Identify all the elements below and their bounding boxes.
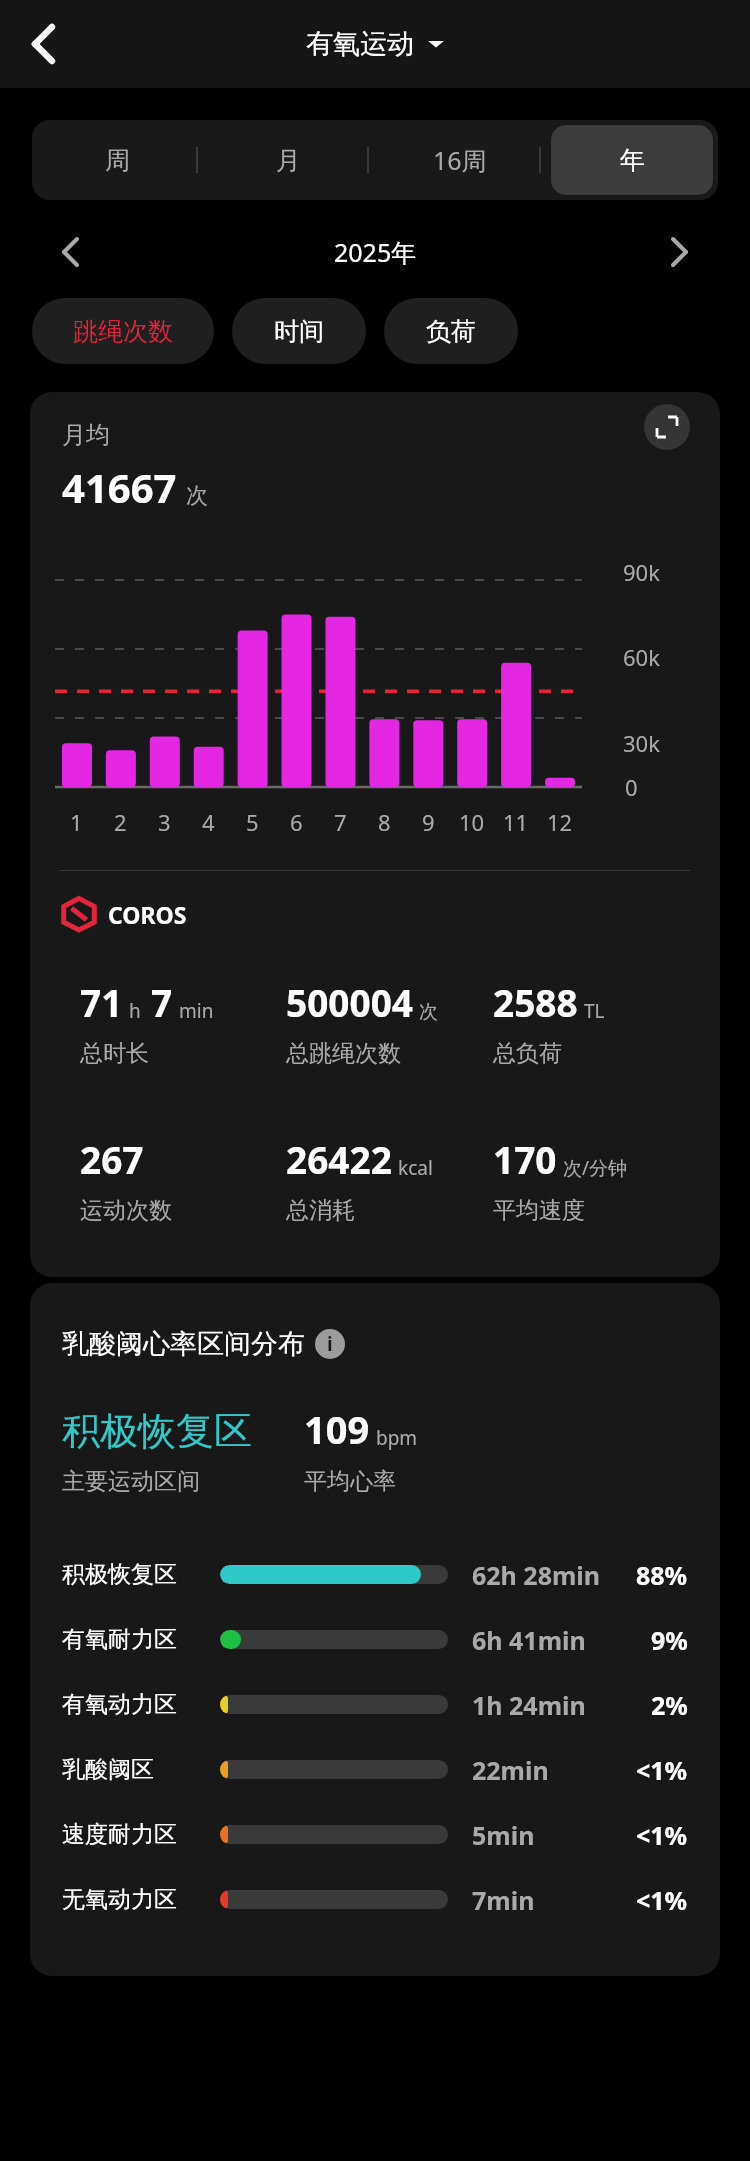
staticText: bpm: [376, 1425, 418, 1451]
staticText: 2025年: [334, 235, 417, 269]
staticText: 109: [304, 1403, 370, 1455]
staticText: 有氧动力区: [62, 1690, 212, 1719]
button[interactable]: 年: [551, 125, 713, 195]
button[interactable]: 速度耐力区: [62, 1802, 688, 1867]
staticText: 积极恢复区: [62, 1560, 212, 1589]
staticText: 7min: [472, 1883, 636, 1917]
staticText: 主要运动区间: [62, 1467, 200, 1496]
staticText: 2: [114, 807, 127, 837]
button[interactable]: 积极恢复区: [62, 1542, 688, 1607]
staticText: 88%: [636, 1558, 688, 1592]
staticText: <1%: [636, 1753, 688, 1787]
button[interactable]: Next year: [654, 226, 706, 278]
staticText: 2588: [493, 977, 578, 1027]
button[interactable]: 时间: [232, 298, 366, 364]
staticText: <1%: [636, 1818, 688, 1852]
staticText: 月: [276, 145, 301, 176]
staticText: 26422: [286, 1134, 392, 1184]
staticText: 总跳绳次数: [286, 1039, 401, 1068]
button[interactable]: Back: [8, 9, 78, 79]
staticText: 2%: [651, 1688, 688, 1722]
staticText: 22min: [472, 1753, 636, 1787]
staticText: 8: [378, 807, 391, 837]
staticText: 3: [158, 807, 171, 837]
staticText: 乳酸阈区: [62, 1755, 212, 1784]
staticText: 90k: [623, 557, 660, 587]
staticText: 平均速度: [493, 1196, 585, 1225]
button[interactable]: 有氧动力区: [62, 1672, 688, 1737]
staticText: 周: [105, 145, 130, 176]
staticText: 负荷: [426, 316, 476, 347]
staticText: 乳酸阈心率区间分布: [62, 1327, 305, 1361]
staticText: i: [327, 1331, 333, 1357]
staticText: 有氧耐力区: [62, 1625, 212, 1654]
button[interactable]: 乳酸阈区: [62, 1737, 688, 1802]
staticText: COROS: [108, 899, 187, 930]
staticText: <1%: [636, 1883, 688, 1917]
button[interactable]: Previous year: [44, 226, 96, 278]
staticText: 0: [625, 772, 638, 802]
staticText: 月均: [62, 420, 110, 450]
button[interactable]: 跳绳次数: [32, 298, 214, 364]
staticText: 无氧动力区: [62, 1885, 212, 1914]
staticText: h: [129, 998, 141, 1024]
staticText: 跳绳次数: [73, 316, 173, 347]
staticText: 267: [80, 1134, 144, 1184]
staticText: TL: [584, 998, 605, 1024]
staticText: min: [179, 998, 214, 1024]
staticText: 60k: [623, 642, 660, 672]
staticText: kcal: [398, 1155, 433, 1181]
staticText: 16周: [433, 143, 487, 177]
button[interactable]: 负荷: [384, 298, 518, 364]
staticText: 62h 28min: [472, 1558, 636, 1592]
staticText: 运动次数: [80, 1196, 172, 1225]
button[interactable]: 有氧耐力区: [62, 1607, 688, 1672]
staticText: 9%: [651, 1623, 688, 1657]
staticText: 次/分钟: [563, 1155, 628, 1181]
staticText: 1h 24min: [472, 1688, 651, 1722]
staticText: 11: [503, 807, 529, 837]
staticText: 30k: [623, 728, 660, 758]
staticText: 有氧运动: [306, 27, 414, 61]
staticText: 170: [493, 1134, 557, 1184]
button[interactable]: 16周: [379, 125, 541, 195]
button[interactable]: 月: [208, 125, 369, 195]
staticText: 10: [459, 807, 485, 837]
button[interactable]: Expand chart: [644, 404, 690, 450]
staticText: 4: [202, 807, 215, 837]
staticText: 12: [547, 807, 573, 837]
staticText: 6h 41min: [472, 1623, 651, 1657]
button[interactable]: Info: [315, 1329, 345, 1359]
staticText: 次: [186, 482, 208, 510]
staticText: 1: [70, 807, 83, 837]
staticText: 41667: [62, 460, 177, 514]
staticText: 7: [151, 977, 173, 1027]
button[interactable]: 周: [37, 125, 198, 195]
staticText: 总时长: [80, 1039, 149, 1068]
staticText: 平均心率: [304, 1467, 396, 1496]
staticText: 5min: [472, 1818, 636, 1852]
staticText: 总负荷: [493, 1039, 562, 1068]
staticText: 时间: [274, 316, 324, 347]
staticText: 500004: [286, 977, 413, 1027]
staticText: 速度耐力区: [62, 1820, 212, 1849]
staticText: 9: [422, 807, 435, 837]
staticText: 5: [246, 807, 259, 837]
staticText: 7: [334, 807, 347, 837]
staticText: 年: [620, 145, 645, 176]
staticText: 积极恢复区: [62, 1407, 252, 1455]
staticText: 次: [419, 1000, 438, 1024]
staticText: 总消耗: [286, 1196, 355, 1225]
button[interactable]: 有氧运动: [306, 27, 444, 61]
staticText: 6: [290, 807, 303, 837]
button[interactable]: 无氧动力区: [62, 1867, 688, 1932]
staticText: 71: [80, 977, 123, 1027]
